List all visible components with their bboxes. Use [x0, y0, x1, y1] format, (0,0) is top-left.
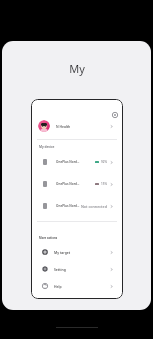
staticText: 92%	[101, 160, 107, 164]
button[interactable]: OnePlus Nord...	[31, 176, 123, 192]
staticText: Setting	[54, 267, 66, 272]
staticText: OnePlus Nord...	[56, 182, 80, 186]
button[interactable]: OnePlus Nord...	[31, 198, 123, 214]
staticText: Not connected	[81, 204, 107, 209]
staticText: More actions	[39, 236, 58, 240]
button[interactable]: Settings	[110, 110, 120, 120]
staticText: OnePlus Nord...	[56, 204, 80, 208]
staticText: Help	[54, 284, 62, 289]
button[interactable]: Setting	[31, 262, 123, 276]
button[interactable]: Help	[31, 279, 123, 293]
button[interactable]: OnePlus Nord...	[31, 154, 123, 170]
staticText: My target	[54, 250, 71, 255]
staticText: OnePlus Nord...	[56, 160, 80, 164]
button[interactable]: N Health	[31, 118, 123, 134]
staticText: 15%	[101, 182, 107, 186]
staticText: N Health	[56, 124, 71, 128]
staticText: My device	[39, 145, 55, 149]
button[interactable]: My target	[31, 245, 123, 259]
staticText: My	[69, 61, 85, 76]
